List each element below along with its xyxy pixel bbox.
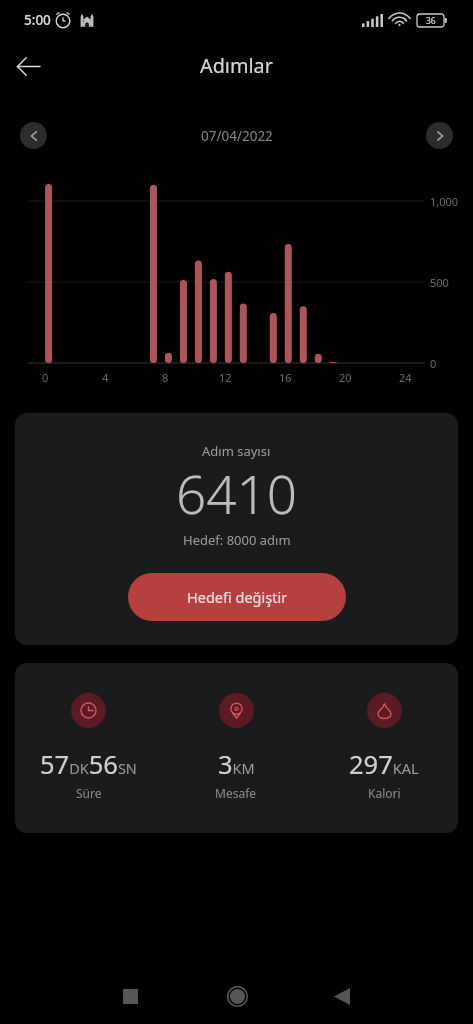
staticText: Süre (76, 785, 102, 801)
staticText: Hedefi değiştir (187, 587, 288, 607)
button[interactable]: Home (217, 976, 257, 1016)
button[interactable]: Back (12, 50, 44, 82)
staticText: 500 (430, 275, 449, 290)
staticText: 1,000 (430, 194, 459, 209)
staticText: Kalori (368, 785, 401, 801)
staticText: 0 (430, 356, 437, 371)
button[interactable]: Next day (426, 122, 453, 149)
staticText: 20 (339, 370, 352, 385)
button[interactable]: Hedefi değiştir (128, 573, 346, 621)
staticText: 0 (42, 370, 49, 385)
staticText: 57DK56SN (40, 747, 137, 782)
staticText: 24 (399, 370, 412, 385)
staticText: 16 (279, 370, 292, 385)
button[interactable]: Back (322, 976, 362, 1016)
staticText: 12 (219, 370, 232, 385)
button[interactable]: Recent apps (110, 976, 150, 1016)
staticText: 36 (426, 15, 436, 27)
staticText: Adımlar (200, 52, 273, 79)
staticText: Mesafe (215, 785, 257, 801)
staticText: Adım sayısı (202, 442, 271, 460)
staticText: 8 (162, 370, 169, 385)
button[interactable]: Previous day (20, 122, 47, 149)
staticText: 3KM (218, 747, 255, 782)
staticText: 07/04/2022 (201, 127, 273, 145)
staticText: 6410 (176, 457, 298, 529)
staticText: 4 (102, 370, 109, 385)
staticText: 297KAL (349, 747, 419, 782)
staticText: 5:00 (24, 11, 51, 29)
staticText: Hedef: 8000 adım (183, 531, 291, 549)
